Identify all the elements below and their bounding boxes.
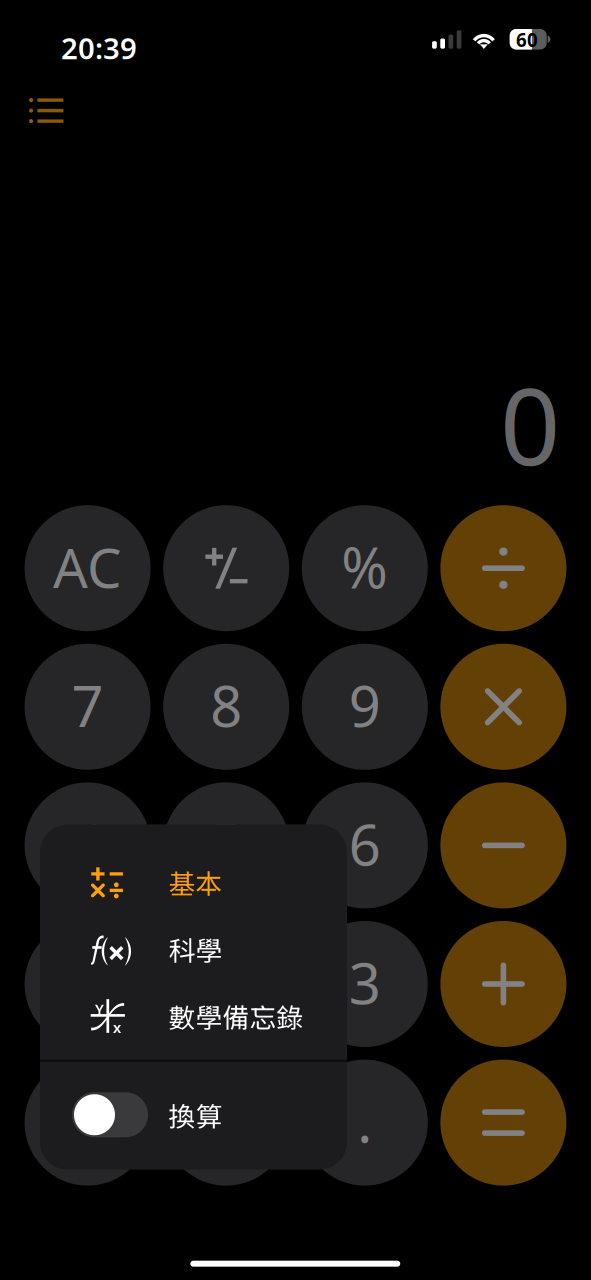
staticText: AC bbox=[53, 530, 122, 603]
button[interactable]: 2 bbox=[163, 921, 289, 1047]
staticText: 5 bbox=[210, 807, 242, 881]
button[interactable]: 0 bbox=[25, 1060, 151, 1186]
staticText: 9 bbox=[349, 668, 381, 742]
staticText: 20:39 bbox=[61, 28, 137, 67]
staticText: 數學備忘錄 bbox=[168, 997, 303, 1035]
button[interactable]: Y bbox=[40, 983, 347, 1050]
button[interactable]: 4 bbox=[25, 782, 151, 908]
button[interactable]: Toggle sign bbox=[163, 505, 289, 631]
button[interactable]: Multiply bbox=[440, 644, 566, 770]
staticText: 0 bbox=[72, 1084, 104, 1158]
staticText: 60 bbox=[516, 27, 538, 52]
button[interactable]: 1 bbox=[25, 921, 151, 1047]
staticText: 4 bbox=[72, 807, 104, 881]
button[interactable]: 7 bbox=[25, 644, 151, 770]
button[interactable]: 9 bbox=[302, 644, 428, 770]
button[interactable]: % bbox=[302, 505, 428, 631]
staticText: 3 bbox=[349, 945, 381, 1020]
staticText: 7 bbox=[72, 668, 104, 742]
staticText: 科學 bbox=[168, 930, 222, 968]
button[interactable]: . bbox=[302, 1060, 428, 1186]
staticText: 0 bbox=[500, 355, 560, 494]
staticText: 6 bbox=[349, 807, 381, 881]
staticText: Y bbox=[95, 999, 104, 1019]
button[interactable]: Subtract bbox=[440, 782, 566, 908]
button[interactable]: 換算 bbox=[40, 1062, 347, 1168]
button[interactable]: 8 bbox=[163, 644, 289, 770]
staticText: 8 bbox=[210, 668, 242, 742]
staticText: % bbox=[341, 529, 388, 604]
button[interactable]: Equals bbox=[440, 1060, 566, 1186]
button[interactable]: 5 bbox=[163, 782, 289, 908]
staticText: x bbox=[113, 1017, 121, 1037]
button[interactable]: 3 bbox=[302, 921, 428, 1047]
staticText: 1 bbox=[72, 945, 104, 1020]
staticText: 換算 bbox=[168, 1095, 222, 1134]
button[interactable]: 科學 bbox=[40, 916, 347, 983]
button[interactable]: Add bbox=[440, 921, 566, 1047]
button[interactable]: 基本 bbox=[40, 849, 347, 916]
button[interactable]: Calculator mode bbox=[9, 79, 83, 141]
button[interactable]: 6 bbox=[302, 782, 428, 908]
button[interactable] bbox=[163, 1060, 289, 1186]
staticText: 基本 bbox=[168, 863, 222, 901]
button[interactable]: Divide bbox=[440, 505, 566, 631]
staticText: 2 bbox=[210, 945, 242, 1020]
button[interactable]: AC bbox=[25, 505, 151, 631]
staticText: . bbox=[357, 1084, 372, 1158]
